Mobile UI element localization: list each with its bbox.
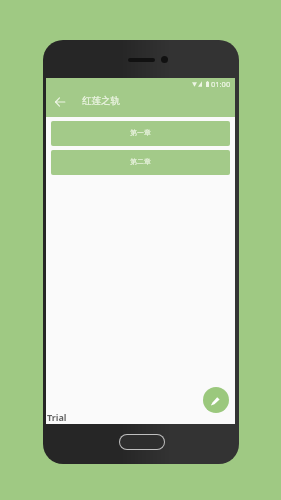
button[interactable]: Edit — [203, 387, 229, 413]
staticText: Trial — [47, 411, 67, 423]
staticText: 01:00 — [211, 79, 231, 89]
button[interactable]: 第一章 — [51, 121, 230, 146]
staticText: 第二章 — [130, 157, 151, 166]
staticText: 红莲之轨 — [82, 95, 120, 107]
staticText: 第一章 — [130, 128, 151, 137]
button[interactable]: Back — [48, 90, 72, 114]
button[interactable]: 第二章 — [51, 150, 230, 175]
